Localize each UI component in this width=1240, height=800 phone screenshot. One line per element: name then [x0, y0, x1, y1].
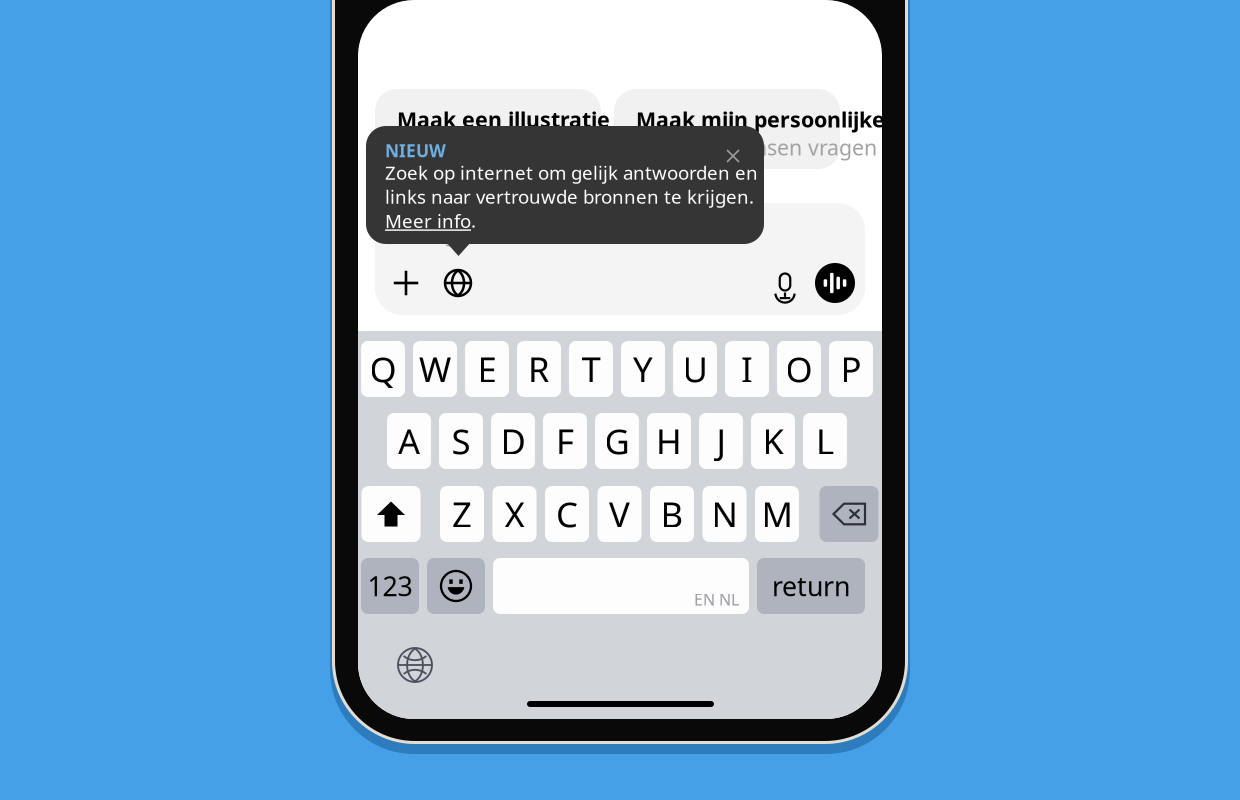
button[interactable]: Spraakmodus [815, 263, 855, 303]
button[interactable]: Maak mijn persoonlijke website [614, 89, 840, 169]
button[interactable]: S [439, 413, 483, 469]
staticText: Zoek op internet om gelijk antwoorden en [385, 160, 758, 185]
staticText: K [762, 418, 783, 464]
button[interactable]: Maak een illustratie [375, 89, 601, 169]
button[interactable]: O [777, 341, 821, 397]
button[interactable]: Spatie [493, 558, 749, 614]
button[interactable]: Voeg toe [384, 261, 428, 305]
staticText: return [772, 568, 850, 604]
staticText: T [581, 346, 600, 392]
staticText: W [419, 346, 451, 392]
staticText: Z [452, 491, 472, 537]
staticText: U [682, 346, 707, 392]
staticText: 123 [367, 568, 412, 604]
button[interactable]: V [597, 486, 641, 542]
button[interactable]: H [647, 413, 691, 469]
staticText: H [656, 418, 682, 464]
staticText: N [711, 491, 737, 537]
staticText: C [556, 491, 578, 537]
staticText: F [556, 418, 574, 464]
staticText: B [660, 491, 683, 537]
staticText: Maak mijn persoonlijke website [636, 105, 974, 133]
button[interactable]: X [492, 486, 536, 542]
button[interactable]: P [829, 341, 873, 397]
staticText: S [451, 418, 470, 464]
button[interactable]: Dicteer [763, 261, 807, 305]
staticText: V [609, 491, 630, 537]
staticText: O [785, 346, 812, 392]
staticText: I [741, 346, 753, 392]
staticText: Vraag maar raak [399, 219, 565, 247]
staticText: A [398, 418, 420, 464]
button[interactable]: Emoji [427, 558, 485, 614]
staticText: D [500, 418, 525, 464]
button[interactable]: U [673, 341, 717, 397]
staticText: Y [633, 346, 653, 392]
staticText: M [761, 491, 792, 537]
button[interactable]: Q [361, 341, 405, 397]
button[interactable]: I [725, 341, 769, 397]
staticText: van een oude zeeman [397, 133, 618, 161]
button[interactable]: D [491, 413, 535, 469]
staticText: Meer info [385, 208, 471, 233]
staticText: P [840, 346, 861, 392]
staticText: R [528, 346, 550, 392]
staticText: . [471, 208, 476, 233]
staticText: G [604, 418, 629, 464]
button[interactable]: N [702, 486, 746, 542]
button[interactable]: L [803, 413, 847, 469]
staticText: L [816, 418, 834, 464]
staticText: links naar vertrouwde bronnen te krijgen… [385, 184, 754, 209]
button[interactable]: M [755, 486, 799, 542]
button[interactable]: Volgende toetsenbord [393, 643, 437, 687]
button[interactable]: G [595, 413, 639, 469]
button[interactable]: Zoek op internet [436, 261, 480, 305]
button[interactable]: Z [440, 486, 484, 542]
staticText: J [716, 418, 725, 464]
button[interactable]: J [699, 413, 743, 469]
button[interactable]: return [757, 558, 865, 614]
button[interactable]: K [751, 413, 795, 469]
button[interactable]: Y [621, 341, 665, 397]
staticText: X [504, 491, 524, 537]
button[interactable]: E [465, 341, 509, 397]
button[interactable]: 123 [361, 558, 419, 614]
staticText: Q [369, 346, 396, 392]
button[interactable]: Sluiten [718, 141, 748, 171]
staticText: Maak een illustratie [397, 105, 610, 133]
button[interactable]: A [387, 413, 431, 469]
button[interactable]: Meer info [385, 208, 471, 232]
button[interactable]: F [543, 413, 587, 469]
staticText: E [477, 346, 496, 392]
button[interactable]: C [545, 486, 589, 542]
button[interactable]: Wis [819, 486, 878, 542]
staticText: EN NL [694, 589, 739, 610]
button[interactable]: B [650, 486, 694, 542]
button[interactable]: R [517, 341, 561, 397]
staticText: NIEUW [385, 139, 446, 162]
button[interactable]: T [569, 341, 613, 397]
button[interactable]: Shift [361, 486, 420, 542]
button[interactable]: W [413, 341, 457, 397]
staticText: voor als mensen vragen hebt [636, 133, 929, 161]
